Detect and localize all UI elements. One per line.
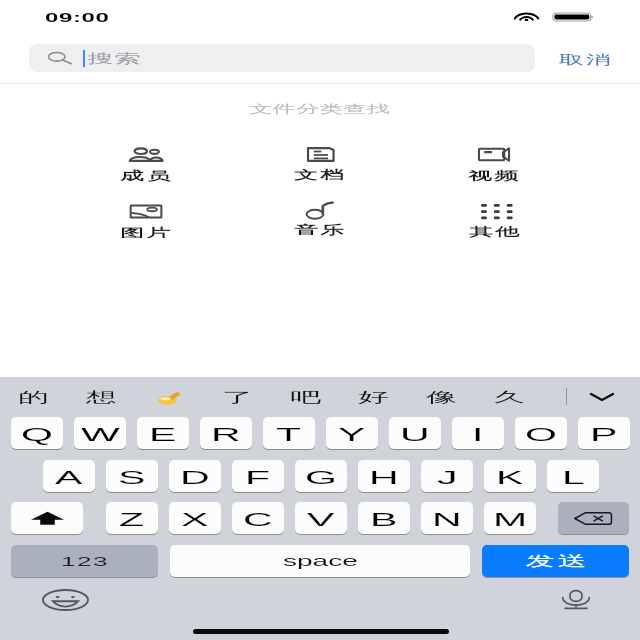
- staticText: 发送: [524, 552, 588, 571]
- staticText: E: [149, 423, 177, 445]
- button[interactable]: 文档: [274, 139, 366, 187]
- staticText: F: [245, 466, 271, 488]
- button[interactable]: L: [547, 460, 599, 492]
- staticText: 想: [86, 388, 117, 406]
- button[interactable]: H: [358, 460, 410, 492]
- button[interactable]: 的: [6, 379, 60, 415]
- staticText: I: [472, 423, 484, 445]
- staticText: 音乐: [294, 222, 347, 237]
- staticText: 09:00: [45, 11, 110, 24]
- button[interactable]: Shift: [11, 502, 83, 534]
- button[interactable]: space: [170, 545, 470, 577]
- staticText: 视频: [468, 168, 521, 183]
- staticText: Z: [119, 508, 145, 530]
- staticText: G: [305, 466, 337, 488]
- button[interactable]: Hide keyboard: [579, 379, 625, 415]
- button[interactable]: V: [295, 502, 347, 534]
- staticText: S: [118, 466, 146, 488]
- button[interactable]: Z: [106, 502, 158, 534]
- button[interactable]: X: [169, 502, 221, 534]
- button[interactable]: 图片: [100, 197, 192, 245]
- button[interactable]: 搜索: [29, 44, 535, 72]
- button[interactable]: 其他: [449, 196, 541, 244]
- button[interactable]: G: [295, 460, 347, 492]
- button[interactable]: J: [421, 460, 473, 492]
- staticText: 文件分类查找: [249, 102, 391, 117]
- staticText: T: [276, 423, 302, 445]
- staticText: B: [370, 508, 398, 530]
- button[interactable]: 好: [346, 379, 400, 415]
- staticText: M: [493, 508, 528, 530]
- button[interactable]: M: [484, 502, 536, 534]
- staticText: space: [283, 554, 358, 569]
- button[interactable]: N: [421, 502, 473, 534]
- button[interactable]: S: [106, 460, 158, 492]
- button[interactable]: B: [358, 502, 410, 534]
- button[interactable]: O: [515, 417, 567, 449]
- button[interactable]: 想: [74, 379, 128, 415]
- staticText: R: [211, 423, 241, 445]
- button[interactable]: W: [74, 417, 126, 449]
- staticText: 久: [494, 388, 525, 406]
- staticText: X: [181, 508, 209, 530]
- button[interactable]: 了: [210, 379, 264, 415]
- staticText: Q: [21, 423, 53, 445]
- button[interactable]: Dictation: [560, 589, 591, 610]
- staticText: C: [243, 508, 273, 530]
- staticText: J: [437, 466, 458, 488]
- staticText: 的: [18, 388, 49, 406]
- button[interactable]: 成员: [100, 140, 192, 188]
- staticText: L: [562, 466, 585, 488]
- button[interactable]: 吧: [278, 379, 332, 415]
- staticText: O: [525, 423, 557, 445]
- staticText: K: [496, 466, 524, 488]
- button[interactable]: U: [389, 417, 441, 449]
- button[interactable]: 久: [482, 379, 536, 415]
- button[interactable]: 音乐: [274, 194, 366, 242]
- staticText: 123: [61, 554, 109, 569]
- button[interactable]: F: [232, 460, 284, 492]
- button[interactable]: R: [200, 417, 252, 449]
- button[interactable]: Delete: [558, 502, 629, 534]
- staticText: W: [81, 423, 120, 445]
- button[interactable]: 视频: [448, 140, 540, 188]
- staticText: 成员: [120, 168, 173, 183]
- button[interactable]: 像: [414, 379, 468, 415]
- button[interactable]: K: [484, 460, 536, 492]
- staticText: 取消: [558, 52, 612, 67]
- staticText: D: [180, 466, 210, 488]
- staticText: 文档: [294, 167, 347, 182]
- staticText: A: [55, 466, 83, 488]
- button[interactable]: Emoji keyboard: [42, 589, 88, 610]
- staticText: H: [369, 466, 399, 488]
- button[interactable]: A: [43, 460, 95, 492]
- staticText: U: [400, 423, 430, 445]
- staticText: V: [307, 508, 335, 530]
- staticText: 像: [426, 388, 457, 406]
- button[interactable]: Y: [326, 417, 378, 449]
- staticText: 其他: [469, 224, 522, 239]
- button[interactable]: 发送: [482, 545, 629, 577]
- staticText: 吧: [290, 388, 321, 406]
- button[interactable]: T: [263, 417, 315, 449]
- staticText: N: [432, 508, 462, 530]
- staticText: 搜索: [87, 50, 141, 67]
- button[interactable]: Q: [11, 417, 63, 449]
- button[interactable]: 123: [11, 545, 158, 577]
- button[interactable]: 取消: [548, 43, 622, 75]
- button[interactable]: P: [578, 417, 630, 449]
- button[interactable]: I: [452, 417, 504, 449]
- button[interactable]: C: [232, 502, 284, 534]
- staticText: 了: [222, 388, 253, 406]
- staticText: 图片: [120, 225, 173, 240]
- staticText: Y: [338, 423, 366, 445]
- staticText: 好: [358, 388, 389, 406]
- button[interactable]: [142, 379, 196, 415]
- button[interactable]: D: [169, 460, 221, 492]
- staticText: P: [590, 423, 618, 445]
- button[interactable]: E: [137, 417, 189, 449]
